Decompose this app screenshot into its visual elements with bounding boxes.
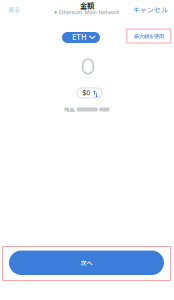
staticText: 残高: — [64, 106, 75, 113]
staticText: $0 — [82, 89, 90, 97]
button[interactable]: ETH — [62, 32, 100, 43]
button[interactable]: 最大額を使用 — [127, 29, 171, 43]
staticText: Ethereum Main Network — [58, 9, 119, 16]
staticText: 戻る — [8, 5, 20, 14]
button[interactable]: 次へ — [2, 246, 170, 280]
staticText: 金額 — [80, 0, 94, 11]
button[interactable]: $0 — [77, 88, 102, 98]
button[interactable]: 戻る — [3, 0, 26, 19]
button[interactable]: キャンセル — [128, 0, 173, 19]
staticText: ETH — [72, 33, 86, 42]
staticText: キャンセル — [133, 5, 168, 14]
staticText: 最大額を使用 — [134, 32, 164, 40]
staticText: 次へ — [80, 258, 92, 267]
